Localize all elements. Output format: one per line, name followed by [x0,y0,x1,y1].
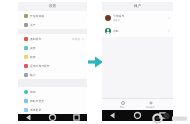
button[interactable]: 通知状态 [18,34,87,43]
staticText: 账户 [134,4,142,9]
staticText: 添加账号 [146,106,155,109]
button[interactable]: 应用分身与双开 [18,61,87,70]
button[interactable]: Back [25,114,32,121]
button[interactable]: 小米账号 [102,11,173,24]
button[interactable]: 系统更新 [18,105,87,114]
staticText: 设置 [49,4,57,9]
button[interactable]: 谷歌 [102,24,173,37]
staticText: 隐私与安全 [30,99,44,103]
staticText: 系统更新 [30,108,42,112]
staticText: 已开启 [72,37,80,40]
button[interactable]: Back [109,112,116,119]
button[interactable]: 添加账号 [143,100,158,110]
staticText: 小米账号 [113,14,125,18]
button[interactable]: 锁屏 [18,52,87,61]
staticText: 锁屏 [30,55,36,59]
staticText: 谷歌 [113,29,119,33]
staticText: 电池 [30,90,36,94]
staticText: 账户 [30,73,36,77]
button[interactable]: 关于 [18,20,87,29]
button[interactable]: 隐私与安全 [18,96,87,105]
button[interactable]: Recents [73,114,80,121]
button[interactable]: Home [49,114,56,121]
button[interactable]: 开发者选项 [18,11,87,20]
staticText: 桌面 [30,46,36,50]
button[interactable]: 同步 [117,100,128,110]
staticText: 同步 [120,106,125,109]
button[interactable]: 桌面 [18,43,87,52]
other: Next [87,58,103,66]
staticText: 开发者选项 [30,14,44,18]
button[interactable]: 电池 [18,87,87,96]
staticText: 应用分身与双开 [30,64,50,68]
button[interactable]: 账户 [18,70,87,79]
button[interactable]: Recents [159,112,166,119]
button[interactable]: Home [134,112,141,119]
staticText: 通知状态 [30,37,42,41]
staticText: 未登录 [113,19,120,22]
staticText: 关于 [30,23,36,27]
